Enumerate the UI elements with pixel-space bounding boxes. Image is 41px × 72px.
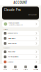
staticText: Manage plan — [28, 14, 37, 16]
button[interactable]: Chats — [0, 66, 10, 70]
staticText: name@example.com — [9, 24, 23, 26]
staticText: Appearance — [8, 32, 18, 34]
staticText: ACCOUNT — [13, 1, 27, 4]
staticText: Support — [3, 47, 9, 49]
button[interactable]: Notifications — [2, 36, 39, 41]
staticText: Your account — [9, 22, 20, 24]
button[interactable]: Terms & policies — [2, 54, 39, 59]
staticText: Data controls — [8, 42, 17, 44]
button[interactable]: Your account — [2, 21, 39, 27]
button[interactable]: Profile — [31, 66, 41, 70]
staticText: Chats — [3, 69, 7, 70]
button[interactable]: Help center — [2, 49, 39, 54]
button[interactable]: Artifacts — [20, 66, 31, 70]
staticText: Notifications — [8, 37, 16, 39]
button[interactable]: Manage plan — [28, 14, 37, 16]
staticText: Log out — [8, 61, 13, 63]
staticText: Claude Pro — [4, 8, 21, 12]
staticText: Projects — [12, 69, 18, 70]
staticText: Artifacts — [23, 69, 28, 70]
button[interactable]: Appearance — [2, 31, 39, 36]
button[interactable]: Log out — [2, 59, 39, 64]
button[interactable]: Data controls — [2, 41, 39, 46]
button[interactable]: Projects — [10, 66, 20, 70]
staticText: Settings — [3, 29, 8, 30]
staticText: Profile — [33, 69, 38, 70]
staticText: Terms & policies — [8, 56, 19, 58]
staticText: Help center — [8, 51, 16, 53]
